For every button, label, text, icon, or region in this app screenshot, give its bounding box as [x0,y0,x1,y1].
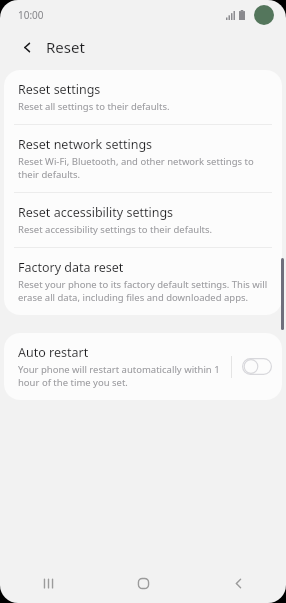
button[interactable]: Factory data reset [4,248,282,315]
staticText: Reset settings [18,81,101,98]
staticText: Reset Wi-Fi, Bluetooth, and other networ… [18,155,268,181]
button[interactable]: Reset network settings [4,125,282,192]
staticText: Reset [46,37,85,57]
staticText: Reset accessibility settings to their de… [18,223,213,236]
button[interactable]: Auto restart [4,333,231,400]
staticText: Factory data reset [18,259,124,276]
button[interactable]: Home [96,563,191,603]
button[interactable]: Reset settings [4,70,282,124]
staticText: Reset accessibility settings [18,204,174,221]
button[interactable]: Back [191,563,286,603]
staticText: Reset network settings [18,136,153,153]
staticText: Your phone will restart automatically wi… [18,363,223,389]
staticText: 10:00 [18,8,44,22]
staticText: Reset your phone to its factory default … [18,278,268,304]
staticText: Reset all settings to their defaults. [18,100,170,113]
staticText: Auto restart [18,344,89,361]
button[interactable]: Reset accessibility settings [4,193,282,247]
button[interactable]: Auto restart toggle [242,358,272,375]
button[interactable]: Back [14,34,40,60]
button[interactable]: Recent apps [0,563,96,603]
